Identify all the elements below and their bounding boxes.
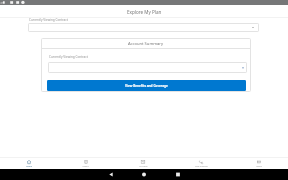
button[interactable]: Home: [0, 158, 57, 169]
staticText: View Benefits and Coverage: [125, 84, 168, 88]
staticText: Home: [26, 165, 32, 168]
staticText: ID Cards: [139, 165, 148, 168]
button[interactable]: Claims: [57, 158, 114, 169]
button[interactable]: Inbox: [230, 158, 288, 169]
staticText: Currently Viewing Contract: [49, 55, 88, 59]
button[interactable]: Select contract: [48, 62, 247, 73]
staticText: Inbox: [256, 165, 262, 168]
staticText: Find a Doctor: [195, 165, 208, 168]
staticText: Currently Viewing Contract: [29, 18, 68, 22]
button[interactable]: Select contract: [28, 23, 259, 32]
staticText: Explore My Plan: [127, 9, 162, 15]
button[interactable]: Find a Doctor: [172, 158, 230, 169]
staticText: Account Summary: [128, 41, 164, 47]
staticText: Claims: [82, 165, 89, 168]
button[interactable]: ID Cards: [114, 158, 172, 169]
button[interactable]: View Benefits and Coverage: [47, 80, 246, 91]
